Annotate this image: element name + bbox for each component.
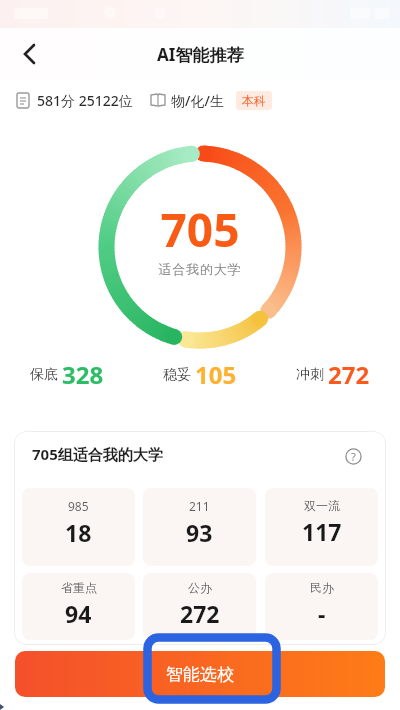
staticText: 18 [65, 517, 92, 548]
staticText: 272 [328, 358, 370, 391]
staticText: 保底 [30, 366, 58, 384]
button[interactable]: 985 [22, 488, 135, 566]
staticText: 93 [186, 517, 213, 548]
staticText: 省重点 [61, 580, 97, 595]
button[interactable]: ? [340, 443, 366, 469]
staticText: - [318, 598, 326, 629]
staticText: 稳妥 [163, 366, 191, 384]
button[interactable] [14, 38, 46, 70]
staticText: 物/化/生 [171, 91, 224, 110]
staticText: 双一流 [304, 498, 340, 513]
button[interactable]: 211 [143, 488, 256, 566]
button[interactable]: 民办 [265, 573, 378, 640]
button[interactable]: 智能选校 [15, 651, 385, 697]
staticText: 智能选校 [166, 664, 234, 685]
staticText: 民办 [310, 580, 334, 595]
staticText: 本科 [242, 93, 266, 108]
button[interactable]: 省重点 [22, 573, 135, 640]
staticText: 705 [0, 198, 400, 261]
staticText: 94 [65, 598, 92, 629]
staticText: 105 [195, 358, 237, 391]
staticText: 705组适合我的大学 [32, 444, 163, 464]
staticText: 581分 25122位 [37, 91, 133, 110]
staticText: 公办 [188, 580, 212, 595]
staticText: 冲刺 [296, 366, 324, 384]
staticText: 985 [68, 498, 89, 514]
staticText: ? [351, 449, 356, 464]
button[interactable]: 双一流 [265, 488, 378, 566]
button[interactable]: 581分 25122位 [16, 88, 272, 112]
staticText: 328 [62, 358, 104, 391]
staticText: 适合我的大学 [0, 261, 400, 277]
staticText: 272 [180, 598, 220, 629]
staticText: 211 [189, 498, 210, 514]
button[interactable]: 公办 [143, 573, 256, 640]
staticText: AI智能推荐 [157, 43, 244, 66]
staticText: 117 [302, 516, 342, 547]
